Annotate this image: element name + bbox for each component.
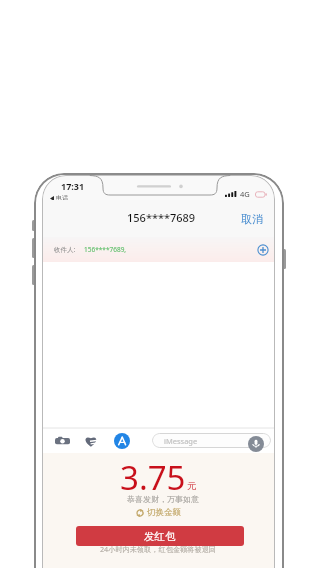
staticText: 收件人:: [54, 245, 76, 254]
staticText: 156****7689: [127, 210, 196, 225]
staticText: 24小时内未领取，红包金额将被退回: [100, 544, 217, 554]
button[interactable]: 切换金额: [133, 506, 184, 519]
staticText: 电话: [56, 194, 68, 202]
staticText: 17:31: [61, 180, 85, 192]
button[interactable]: Camera: [55, 435, 70, 447]
button[interactable]: iMessage: [152, 433, 271, 448]
staticText: iMessage: [164, 436, 198, 446]
staticText: 切换金额: [147, 507, 181, 518]
staticText: 元: [187, 480, 197, 492]
staticText: 156****7689,: [84, 245, 127, 254]
staticText: 取消: [241, 212, 263, 226]
staticText: 4G: [240, 189, 250, 199]
staticText: 发红包: [144, 530, 176, 543]
button[interactable]: 取消: [235, 206, 269, 232]
button[interactable]: Add contact: [257, 244, 269, 256]
staticText: 3.75: [120, 455, 186, 500]
button[interactable]: Digital Touch: [84, 435, 99, 447]
button[interactable]: 发红包: [76, 526, 244, 546]
staticText: 恭喜发财，万事如意: [127, 494, 199, 504]
button[interactable]: App Store: [114, 433, 130, 449]
